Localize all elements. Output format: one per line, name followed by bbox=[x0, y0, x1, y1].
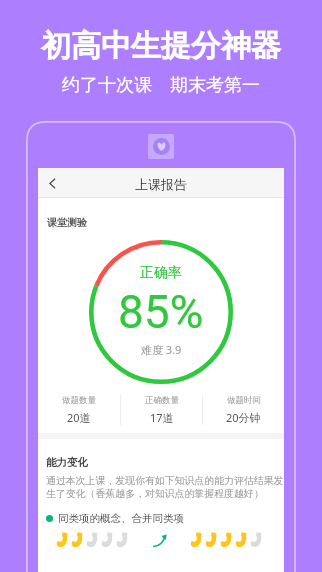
staticText: 课堂测验 bbox=[47, 216, 87, 229]
staticText: 做题数量 bbox=[62, 395, 96, 406]
staticText: 约了十次课 期末考第一 bbox=[62, 72, 260, 97]
staticText: 17道 bbox=[150, 410, 174, 425]
staticText: 难度 3.9 bbox=[141, 342, 182, 357]
staticText: 做题时间 bbox=[227, 395, 261, 406]
staticText: 上课报告 bbox=[135, 176, 187, 192]
button[interactable]: 做题数量 bbox=[38, 390, 120, 430]
button[interactable]: 做题时间 bbox=[203, 390, 284, 430]
staticText: 能力变化 bbox=[46, 456, 88, 469]
staticText: 正确率 bbox=[140, 264, 182, 282]
staticText: 初高中生提分神器 bbox=[41, 27, 281, 65]
staticText: 20道 bbox=[67, 410, 91, 425]
staticText: 85% bbox=[118, 285, 204, 339]
staticText: 20分钟 bbox=[226, 410, 261, 425]
button[interactable]: Back bbox=[38, 168, 66, 198]
staticText: 正确数量 bbox=[145, 395, 179, 406]
staticText: 通过本次上课，发现你有如下知识点的能力评估结果发生了变化（香蕉越多，对知识点的掌… bbox=[46, 474, 286, 500]
staticText: 同类项的概念、合并同类项 bbox=[58, 512, 184, 525]
button[interactable]: 同类项的概念、合并同类项 bbox=[46, 512, 292, 525]
button[interactable]: 正确数量 bbox=[121, 390, 202, 430]
